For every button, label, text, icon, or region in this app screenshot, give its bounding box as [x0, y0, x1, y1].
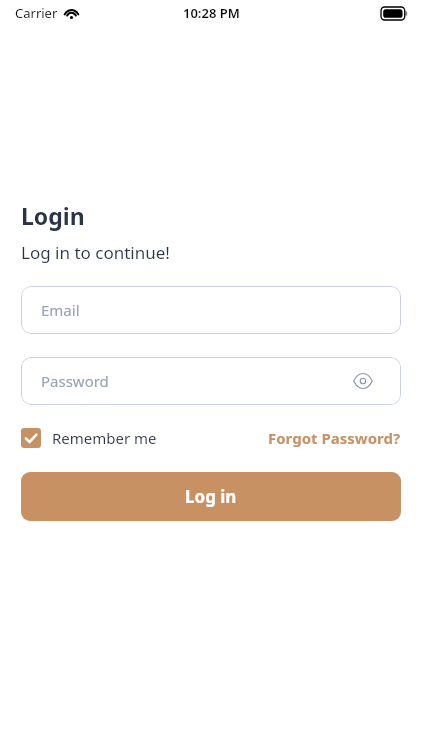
button[interactable]: Show password: [351, 369, 375, 393]
button[interactable]: Password: [21, 357, 401, 405]
button[interactable]: Email: [21, 286, 401, 334]
staticText: Log in to continue!: [21, 241, 170, 264]
staticText: Login: [21, 200, 85, 231]
button[interactable]: Log in: [21, 472, 401, 521]
staticText: 10:28 PM: [183, 4, 240, 22]
staticText: Password: [41, 371, 109, 391]
staticText: Remember me: [52, 428, 157, 448]
staticText: Log in: [185, 485, 237, 508]
staticText: Carrier: [15, 4, 58, 22]
staticText: Forgot Password?: [268, 428, 401, 448]
button[interactable]: Forgot Password?: [268, 426, 401, 450]
button[interactable]: Remember me: [21, 426, 157, 450]
staticText: Email: [41, 300, 80, 320]
